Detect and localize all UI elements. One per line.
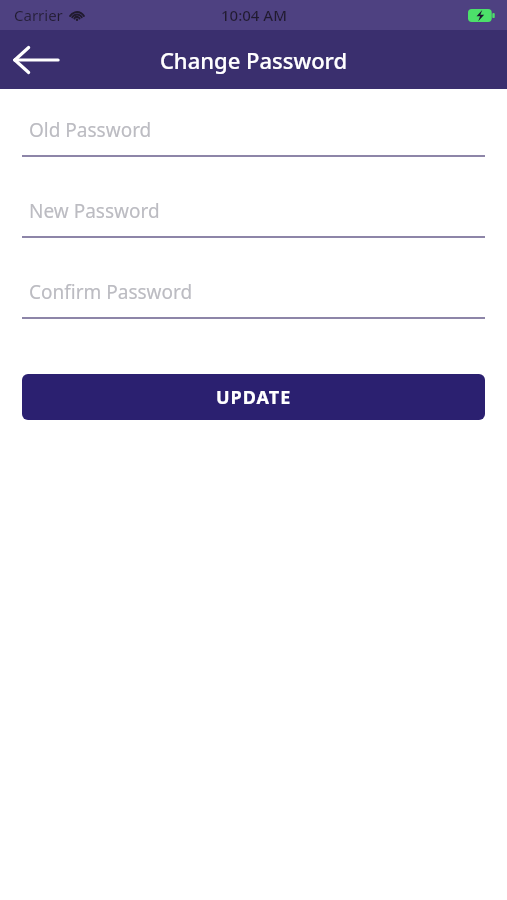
staticText: Change Password bbox=[70, 45, 437, 75]
staticText: Confirm Password bbox=[29, 279, 193, 305]
button[interactable]: UPDATE bbox=[22, 374, 485, 420]
button[interactable]: New Password bbox=[22, 186, 485, 267]
staticText: UPDATE bbox=[216, 385, 292, 410]
button[interactable]: Back bbox=[10, 34, 62, 86]
staticText: Carrier bbox=[14, 5, 63, 25]
staticText: New Password bbox=[29, 198, 160, 224]
staticText: Old Password bbox=[29, 117, 152, 143]
button[interactable]: Confirm Password bbox=[22, 267, 485, 348]
staticText: 10:04 AM bbox=[221, 5, 287, 25]
button[interactable]: Old Password bbox=[22, 105, 485, 186]
